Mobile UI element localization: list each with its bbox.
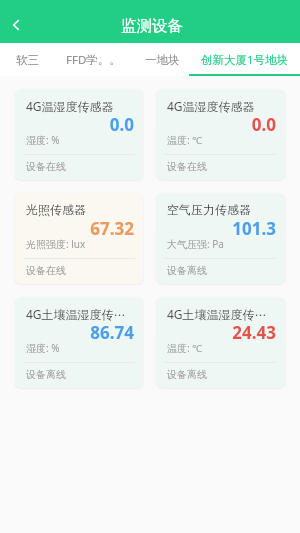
staticText: 大气压强: Pa (167, 237, 224, 251)
staticText: 67.32 (15, 217, 134, 240)
staticText: 4G温湿度传感器 (26, 98, 114, 114)
staticText: 软三 (16, 53, 39, 67)
staticText: 4G土壤温湿度传感器 (26, 306, 134, 322)
button[interactable]: 一地块 (138, 43, 187, 76)
staticText: 湿度: % (26, 133, 60, 147)
staticText: 设备离线 (167, 368, 207, 381)
staticText: 温度: ℃ (167, 133, 203, 147)
button[interactable]: 4G土壤温湿度传感器 (15, 297, 143, 388)
button[interactable]: Back (0, 0, 32, 43)
staticText: 24.43 (156, 321, 276, 344)
staticText: 0.0 (156, 113, 276, 136)
staticText: FFD学。。 (66, 52, 121, 68)
staticText: 设备在线 (26, 264, 66, 277)
staticText: 温度: ℃ (167, 341, 203, 355)
staticText: 101.3 (156, 217, 276, 240)
button[interactable]: 空气压力传感器 (156, 193, 285, 284)
staticText: 设备在线 (26, 160, 66, 173)
staticText: 4G温湿度传感器 (167, 98, 255, 114)
button[interactable]: 光照传感器 (15, 193, 143, 284)
staticText: 86.74 (15, 321, 134, 344)
staticText: 监测设备 (121, 16, 183, 36)
staticText: 设备离线 (167, 264, 207, 277)
staticText: 一地块 (145, 53, 180, 67)
staticText: 设备离线 (26, 368, 66, 381)
staticText: 湿度: % (26, 341, 60, 355)
button[interactable]: FFD学。。 (48, 43, 139, 76)
button[interactable]: 4G温湿度传感器 (156, 89, 285, 180)
staticText: 4G土壤温湿度传感器 (167, 306, 276, 322)
button[interactable]: 4G温湿度传感器 (15, 89, 143, 180)
staticText: 空气压力传感器 (167, 202, 251, 217)
button[interactable]: 创新大厦1号地块 (189, 43, 300, 76)
staticText: 光照传感器 (26, 202, 86, 217)
staticText: 创新大厦1号地块 (201, 52, 289, 68)
button[interactable]: 4G土壤温湿度传感器 (156, 297, 285, 388)
staticText: 0.0 (15, 113, 134, 136)
staticText: 设备在线 (167, 160, 207, 173)
staticText: 光照强度: lux (26, 237, 86, 251)
button[interactable]: 软三 (2, 43, 52, 76)
